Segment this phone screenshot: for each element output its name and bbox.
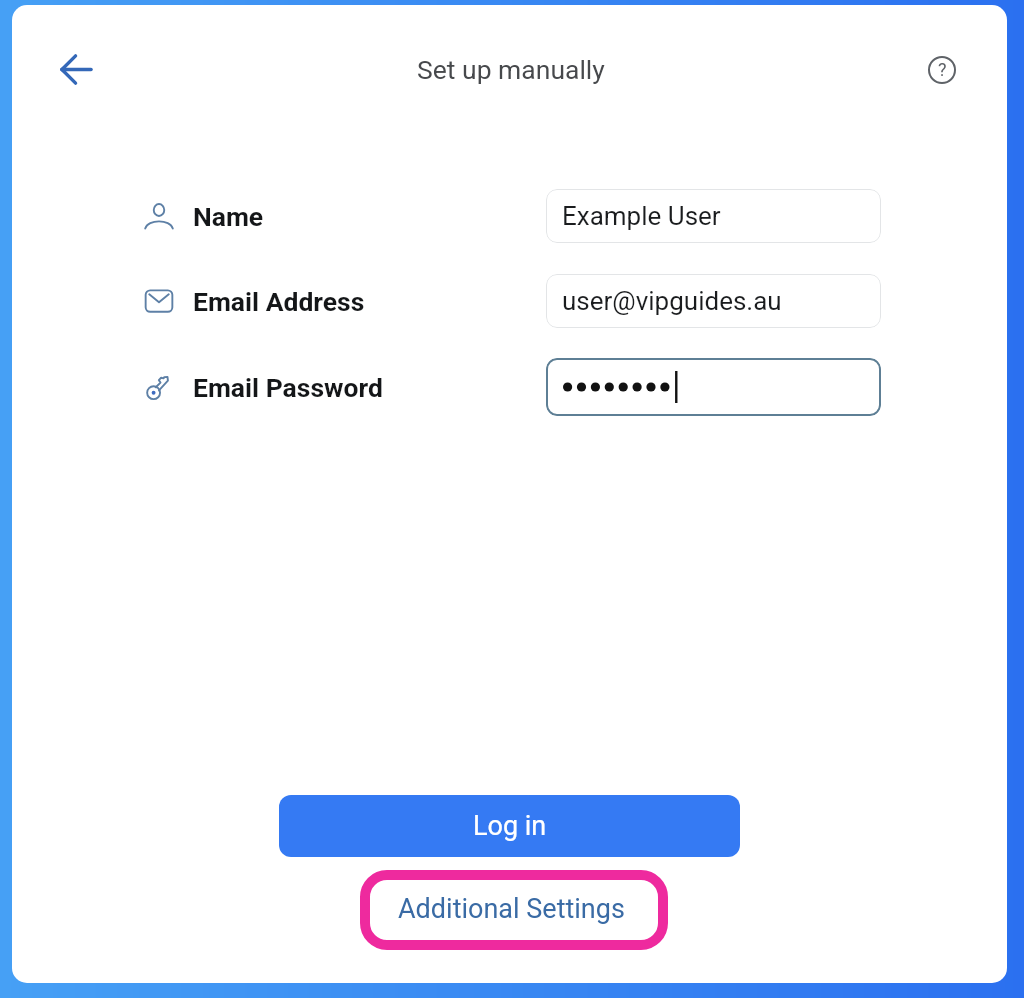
button[interactable]: Example User: [546, 189, 881, 243]
staticText: Set up manually: [417, 54, 605, 85]
staticText: user@vipguides.au: [562, 286, 782, 316]
button[interactable]: Log in: [279, 795, 740, 857]
staticText: Additional Settings: [398, 893, 625, 925]
staticText: Log in: [473, 810, 547, 842]
button[interactable]: Additional Settings: [360, 870, 668, 950]
button[interactable]: user@vipguides.au: [546, 274, 881, 328]
staticText: Example User: [562, 201, 721, 231]
button[interactable]: Back: [48, 41, 104, 97]
staticText: Name: [193, 201, 264, 232]
staticText: Email Password: [193, 372, 383, 403]
button[interactable]: [546, 358, 881, 416]
staticText: ?: [938, 59, 947, 80]
button[interactable]: Help: [914, 42, 970, 98]
staticText: Email Address: [193, 286, 365, 317]
